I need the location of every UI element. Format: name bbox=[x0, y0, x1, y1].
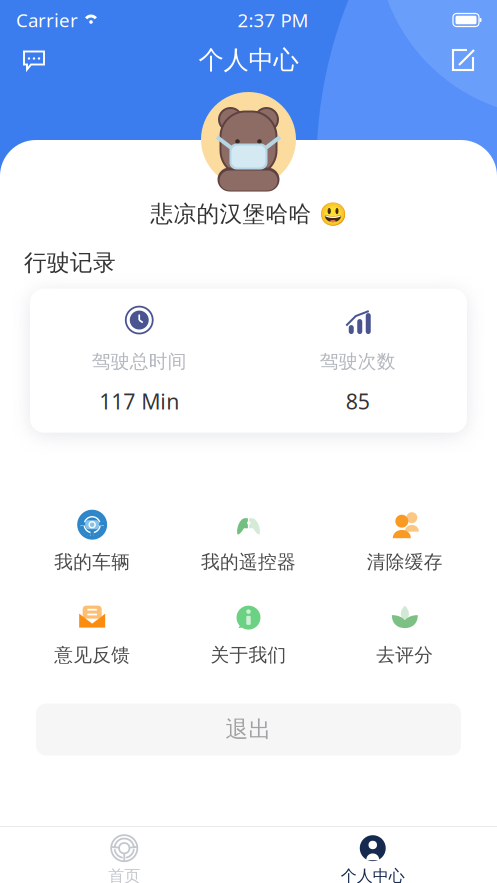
staticText: 首页 bbox=[108, 866, 140, 883]
staticText: 意见反馈 bbox=[54, 644, 130, 666]
button[interactable]: Messages bbox=[20, 46, 48, 74]
button[interactable]: 关于我们 bbox=[170, 603, 327, 666]
staticText: 117 Min bbox=[99, 387, 179, 415]
staticText: 行驶记录 bbox=[24, 249, 116, 277]
staticText: 驾驶总时间 bbox=[92, 350, 187, 373]
button[interactable]: 首页 bbox=[0, 834, 248, 883]
button[interactable]: 意见反馈 bbox=[14, 603, 170, 666]
staticText: 个人中心 bbox=[341, 866, 405, 883]
staticText: 悲凉的汉堡哈哈 😃 bbox=[150, 200, 346, 228]
staticText: 驾驶次数 bbox=[320, 350, 396, 373]
button[interactable]: 清除缓存 bbox=[327, 510, 483, 574]
staticText: 个人中心 bbox=[198, 44, 298, 75]
button[interactable]: Edit profile bbox=[449, 46, 477, 74]
staticText: 去评分 bbox=[376, 644, 433, 666]
staticText: 清除缓存 bbox=[367, 551, 443, 574]
staticText: Carrier bbox=[16, 8, 78, 32]
button[interactable]: 我的车辆 bbox=[14, 510, 170, 574]
staticText: 我的车辆 bbox=[54, 551, 130, 574]
staticText: 关于我们 bbox=[210, 644, 286, 666]
staticText: 退出 bbox=[225, 716, 271, 743]
button[interactable]: 我的遥控器 bbox=[170, 510, 327, 574]
staticText: 2:37 PM bbox=[237, 8, 308, 32]
staticText: 85 bbox=[346, 387, 370, 415]
staticText: 我的遥控器 bbox=[201, 551, 296, 574]
button[interactable]: 个人中心 bbox=[248, 834, 497, 883]
button[interactable]: 退出 bbox=[36, 703, 461, 755]
button[interactable]: 去评分 bbox=[327, 603, 483, 666]
